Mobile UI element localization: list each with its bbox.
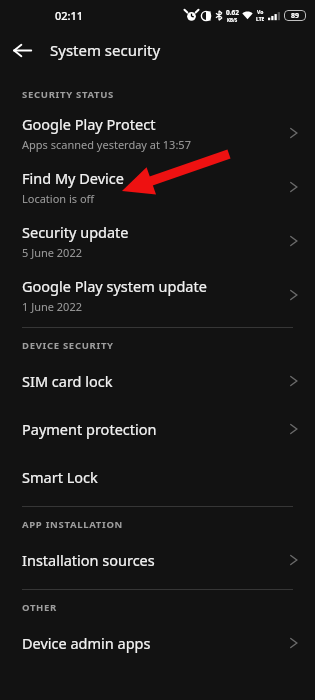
staticText: Security update [22, 222, 129, 242]
staticText: DEVICE SECURITY [22, 339, 114, 352]
staticText: APP INSTALLATION [22, 518, 124, 531]
button[interactable]: Device admin apps [0, 619, 315, 667]
button[interactable]: Google Play system update [0, 268, 315, 322]
staticText: LTE [256, 16, 265, 23]
button[interactable]: Payment protection [0, 405, 315, 453]
staticText: 0.62 [226, 8, 239, 17]
button[interactable]: Google Play Protect [0, 106, 315, 160]
staticText: Device admin apps [22, 633, 151, 653]
staticText: 89 [291, 11, 300, 21]
button[interactable]: Back [0, 30, 44, 70]
staticText: Google Play Protect [22, 114, 156, 134]
staticText: OTHER [22, 601, 58, 614]
staticText: SECURITY STATUS [22, 88, 115, 101]
staticText: Payment protection [22, 419, 157, 439]
staticText: 5 June 2022 [22, 245, 82, 260]
staticText: SIM card lock [22, 371, 113, 391]
staticText: Find My Device [22, 168, 124, 188]
staticText: 02:11 [55, 8, 84, 23]
button[interactable]: Smart Lock [0, 453, 315, 501]
staticText: Smart Lock [22, 467, 98, 487]
staticText: 1 June 2022 [22, 299, 82, 314]
staticText: Apps scanned yesterday at 13:57 [22, 137, 191, 152]
staticText: Installation sources [22, 550, 155, 570]
staticText: Google Play system update [22, 276, 207, 296]
staticText: Vo [257, 9, 264, 16]
staticText: KB/S [227, 17, 238, 23]
button[interactable]: Security update [0, 214, 315, 268]
button[interactable]: Installation sources [0, 536, 315, 584]
button[interactable]: Find My Device [0, 160, 315, 214]
staticText: Location is off [22, 191, 95, 206]
staticText: System security [50, 40, 161, 60]
button[interactable]: SIM card lock [0, 357, 315, 405]
